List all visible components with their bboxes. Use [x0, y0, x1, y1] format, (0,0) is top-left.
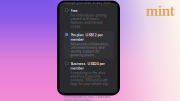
staticText: Pro plan US$12 per member [70, 33, 102, 42]
button[interactable]: Free [63, 7, 113, 30]
staticText: Prices shown in USD. Taxes may apply at … [63, 95, 110, 101]
staticText: Business US$24 per member [70, 62, 104, 70]
staticText: mint [146, 4, 175, 19]
staticText: For individuals getting started with bas… [70, 13, 106, 28]
staticText: Choose the plan that works best for your… [63, 0, 111, 5]
staticText: Free [70, 8, 77, 13]
button[interactable]: Business US$24 per member [63, 60, 113, 87]
staticText: Everything in Pro plus advanced security… [70, 71, 108, 86]
button[interactable]: Pro plan US$12 per member [63, 31, 113, 59]
staticText: Advanced collaboration, unlimited histor… [70, 42, 109, 57]
